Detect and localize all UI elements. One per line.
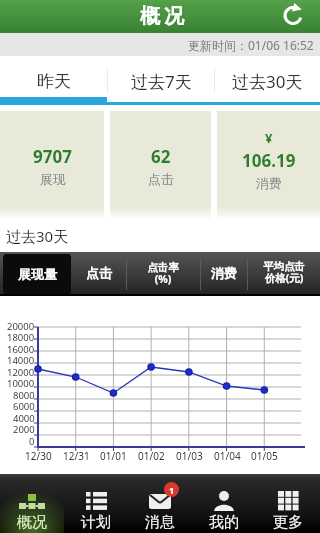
staticText: 106.19 <box>242 149 296 172</box>
staticText: 消息 <box>145 513 175 532</box>
button[interactable]: 平均点击 价格(元) <box>247 252 320 294</box>
staticText: 8000 <box>13 389 35 400</box>
staticText: 18000 <box>7 331 35 342</box>
staticText: 展现 <box>40 171 66 187</box>
button[interactable]: 过去7天 <box>108 56 214 105</box>
staticText: 过去30天 <box>232 70 303 93</box>
staticText: 展现量 <box>18 266 57 282</box>
button[interactable]: 展现量 <box>3 254 71 294</box>
staticText: 计划 <box>81 513 111 532</box>
button[interactable]: ¥ <box>217 111 320 220</box>
button[interactable]: 点击率 (%) <box>126 252 200 294</box>
button[interactable]: 点击 <box>71 252 126 294</box>
staticText: 12/31 <box>63 449 90 461</box>
staticText: 点击率 (%) <box>147 261 179 286</box>
staticText: 14000 <box>7 354 35 365</box>
staticText: 概况 <box>17 513 47 532</box>
button[interactable]: 更多 <box>256 474 320 533</box>
button[interactable]: 计划 <box>64 474 128 533</box>
button[interactable]: 概况 <box>0 474 64 533</box>
button[interactable]: 消费 <box>200 252 247 294</box>
staticText: 概况 <box>138 4 186 29</box>
button[interactable]: 62 <box>110 111 211 220</box>
staticText: 12000 <box>7 366 35 377</box>
staticText: 16000 <box>7 343 35 354</box>
staticText: 1 <box>169 484 175 496</box>
staticText: 12/30 <box>25 449 52 461</box>
staticText: 0 <box>29 435 35 446</box>
staticText: ¥ <box>265 129 273 147</box>
staticText: 9707 <box>33 145 72 168</box>
staticText: 62 <box>151 145 171 168</box>
staticText: 消费 <box>211 265 237 281</box>
staticText: 20000 <box>7 320 35 331</box>
staticText: 01/01 <box>100 449 127 461</box>
button[interactable]: 昨天 <box>0 56 107 105</box>
button[interactable]: 9707 <box>0 111 104 220</box>
staticText: 过去7天 <box>131 70 192 93</box>
staticText: 平均点击 价格(元) <box>263 260 305 286</box>
staticText: 01/03 <box>176 449 203 461</box>
staticText: 更多 <box>273 513 303 532</box>
staticText: 10000 <box>7 377 35 388</box>
staticText: 我的 <box>209 513 239 532</box>
staticText: 6000 <box>13 400 35 411</box>
button[interactable]: 过去30天 <box>215 56 320 105</box>
staticText: 消费 <box>256 175 282 191</box>
staticText: 01/02 <box>138 449 165 461</box>
button[interactable]: 我的 <box>192 474 256 533</box>
staticText: 过去30天 <box>6 226 69 246</box>
staticText: 点击 <box>148 171 174 187</box>
staticText: 4000 <box>13 412 35 423</box>
staticText: 昨天 <box>37 71 71 92</box>
staticText: 01/04 <box>214 449 241 461</box>
staticText: 点击 <box>86 265 112 281</box>
button[interactable] <box>280 4 306 30</box>
staticText: 更新时间：01/06 16:52 <box>188 37 314 53</box>
staticText: 01/05 <box>251 449 278 461</box>
staticText: 2000 <box>13 423 35 434</box>
button[interactable]: 消息 <box>128 474 192 533</box>
